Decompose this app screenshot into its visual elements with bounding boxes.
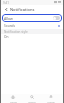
button[interactable]: On [1, 34, 63, 39]
staticText: Sounds [4, 24, 16, 28]
button[interactable]: Search [25, 95, 39, 103]
staticText: Allow [4, 16, 13, 21]
staticText: 9:41 [3, 1, 9, 5]
button[interactable]: Toggle [53, 16, 60, 20]
staticText: Search [28, 100, 36, 103]
staticText: Notification style [4, 30, 28, 34]
button[interactable]: Home [6, 95, 20, 103]
button[interactable]: Sounds [1, 23, 63, 29]
button[interactable]: Allow [2, 14, 62, 22]
button[interactable]: Back [3, 6, 9, 12]
button[interactable]: Profile [44, 95, 58, 103]
staticText: Home [10, 100, 17, 103]
staticText: Profile [47, 100, 55, 103]
staticText: On [4, 35, 9, 39]
staticText: Notifications [10, 7, 35, 12]
